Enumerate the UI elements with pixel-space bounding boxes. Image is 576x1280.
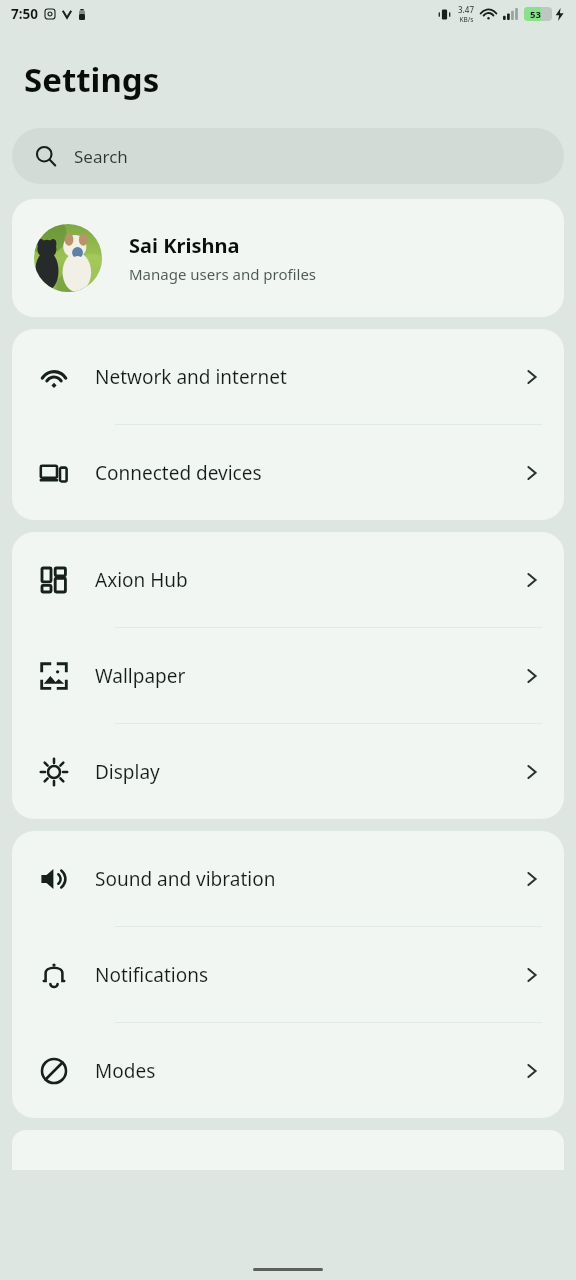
staticText: Display xyxy=(95,759,522,785)
staticText: Sound and vibration xyxy=(95,866,522,892)
staticText: Manage users and profiles xyxy=(129,264,317,284)
staticText: Sai Krishna xyxy=(129,232,240,259)
staticText: Wallpaper xyxy=(95,663,522,689)
staticText: Search xyxy=(74,145,128,168)
button[interactable]: Notifications xyxy=(12,927,564,1022)
staticText: 53 xyxy=(530,8,541,21)
staticText: 7:50 xyxy=(11,5,38,23)
staticText: Network and internet xyxy=(95,364,522,390)
button[interactable]: Display xyxy=(12,724,564,819)
button[interactable]: Axion Hub xyxy=(12,532,564,627)
button[interactable]: Network and internet xyxy=(12,329,564,424)
button[interactable]: Search xyxy=(12,128,564,184)
button[interactable]: Sai Krishna xyxy=(12,199,564,317)
staticText: Axion Hub xyxy=(95,567,522,593)
staticText: 3.47 xyxy=(458,4,474,15)
staticText: KB/s xyxy=(459,15,474,24)
staticText: Connected devices xyxy=(95,460,522,486)
button[interactable]: Connected devices xyxy=(12,425,564,520)
staticText: Notifications xyxy=(95,962,522,988)
staticText: Modes xyxy=(95,1058,522,1084)
staticText: Settings xyxy=(24,57,160,102)
button[interactable]: Sound and vibration xyxy=(12,831,564,926)
button[interactable]: Wallpaper xyxy=(12,628,564,723)
button[interactable]: Modes xyxy=(12,1023,564,1118)
